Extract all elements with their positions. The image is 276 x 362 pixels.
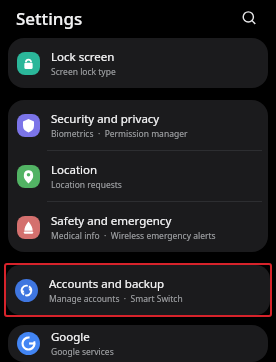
button[interactable]: Lock screen	[8, 38, 268, 88]
button[interactable]: Safety and emergency	[8, 202, 268, 252]
staticText: Location requests	[51, 179, 122, 191]
staticText: Lock screen	[51, 49, 115, 65]
staticText: Accounts and backup	[49, 276, 165, 292]
button[interactable]: Accounts and backup	[6, 265, 270, 315]
staticText: Biometrics · Permission manager	[51, 128, 188, 140]
button[interactable]: Location	[8, 151, 268, 201]
staticText: Settings	[16, 7, 83, 30]
staticText: Google services	[51, 346, 114, 358]
staticText: Screen lock type	[51, 66, 116, 78]
staticText: Google	[51, 329, 90, 345]
staticText: Security and privacy	[51, 111, 160, 127]
staticText: Location	[51, 162, 98, 178]
button[interactable]: Search	[236, 5, 262, 31]
button[interactable]: Google	[8, 325, 268, 362]
button[interactable]: Security and privacy	[8, 100, 268, 150]
staticText: Medical info · Wireless emergency alerts	[51, 230, 216, 242]
staticText: Safety and emergency	[51, 213, 172, 229]
staticText: Manage accounts · Smart Switch	[49, 293, 183, 305]
